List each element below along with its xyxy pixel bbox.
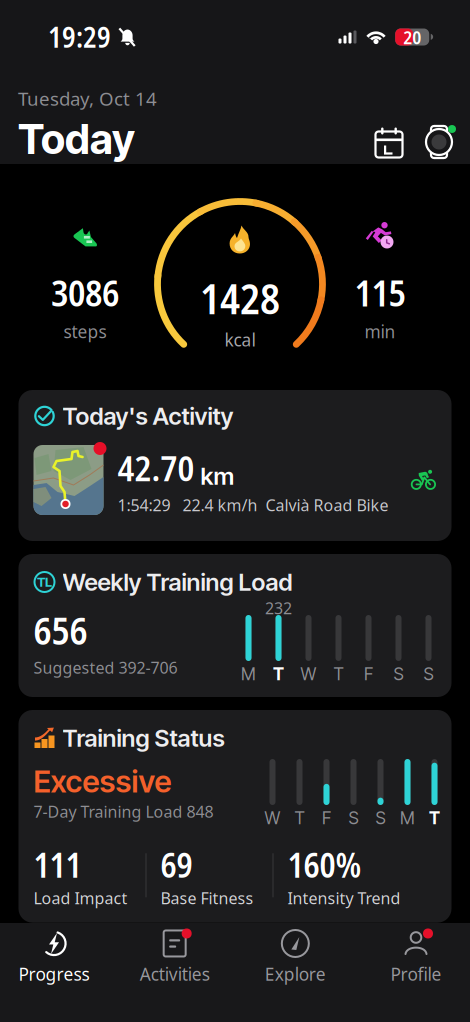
staticText: Today — [18, 114, 135, 164]
staticText: Training Status — [62, 723, 224, 752]
staticText: 19:29 — [48, 18, 111, 56]
staticText: TL — [37, 574, 52, 590]
staticText: S — [393, 663, 403, 684]
staticText: 656 — [33, 605, 87, 656]
staticText: kcal — [224, 328, 255, 351]
staticText: Profile — [390, 962, 441, 985]
staticText: Weekly Training Load — [62, 567, 292, 596]
staticText: T — [273, 663, 284, 684]
staticText: 3086 — [51, 268, 119, 317]
staticText: steps — [63, 320, 106, 343]
staticText: Suggested 392-706 — [33, 657, 177, 678]
staticText: 160% — [287, 842, 361, 887]
staticText: F — [322, 807, 331, 828]
staticText: Tuesday, Oct 14 — [18, 86, 157, 111]
staticText: 1:54:29 22.4 km/h Calvià Road Bike — [117, 494, 388, 516]
button[interactable]: TL — [18, 554, 451, 697]
staticText: 42.70 — [117, 444, 194, 491]
staticText: km — [200, 461, 234, 490]
button[interactable]: Activities — [123, 929, 227, 985]
staticText: 1428 — [200, 270, 280, 326]
staticText: min — [364, 320, 395, 343]
staticText: M — [241, 663, 256, 684]
staticText: Explore — [265, 962, 326, 985]
staticText: T — [294, 807, 304, 828]
staticText: S — [375, 807, 385, 828]
button[interactable]: Training Status — [18, 710, 451, 923]
button[interactable]: Profile — [364, 929, 468, 985]
button[interactable]: Progress — [2, 929, 106, 985]
staticText: 69 — [160, 842, 192, 887]
button[interactable]: Explore — [243, 929, 347, 985]
staticText: Intensity Trend — [287, 887, 400, 909]
staticText: 20 — [403, 24, 421, 50]
button[interactable]: Today's Activity — [18, 390, 451, 541]
staticText: 111 — [33, 842, 81, 887]
staticText: S — [348, 807, 358, 828]
staticText: S — [423, 663, 433, 684]
staticText: 232 — [265, 597, 292, 619]
staticText: Base Fitness — [160, 887, 253, 909]
staticText: Excessive — [33, 763, 171, 800]
staticText: Today's Activity — [62, 401, 233, 430]
staticText: W — [264, 807, 280, 828]
staticText: 7-Day Training Load 848 — [33, 801, 213, 822]
staticText: W — [300, 663, 316, 684]
staticText: Load Impact — [33, 887, 127, 909]
staticText: F — [364, 663, 373, 684]
staticText: M — [400, 807, 415, 828]
button[interactable]: Connected watch — [414, 120, 464, 164]
staticText: 115 — [354, 268, 405, 317]
button[interactable]: Calendar — [364, 120, 414, 164]
staticText: T — [333, 663, 343, 684]
staticText: Progress — [18, 962, 89, 985]
staticText: Activities — [140, 962, 210, 985]
staticText: T — [429, 807, 440, 828]
